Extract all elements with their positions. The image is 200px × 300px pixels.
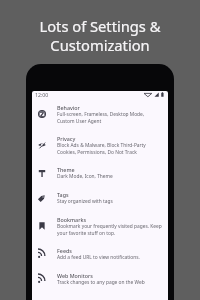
- button[interactable]: Theme: [32, 160, 168, 185]
- staticText: Privacy: [57, 135, 76, 142]
- staticText: Bookmarks: [57, 216, 86, 223]
- staticText: Theme: [57, 166, 75, 173]
- staticText: Dark Mode, Icon, Theme: [57, 173, 113, 180]
- button[interactable]: Bookmarks: [32, 210, 168, 241]
- staticText: Full-screen, Frameless, Desktop Mode, Cu…: [57, 111, 145, 124]
- staticText: Behavior: [57, 104, 80, 111]
- staticText: Track changes to any page on the Web: [57, 279, 145, 286]
- staticText: Lots of Settings & Customization: [0, 16, 200, 55]
- staticText: Add a feed URL to view notifications.: [57, 254, 140, 261]
- staticText: 12:00: [35, 91, 49, 98]
- staticText: Tags: [57, 191, 69, 198]
- staticText: Block Ads & Malware, Block Third-Party C…: [57, 142, 146, 155]
- button[interactable]: Privacy: [32, 129, 168, 160]
- staticText: Feeds: [57, 247, 72, 254]
- staticText: Stay organized with tags: [57, 198, 113, 205]
- button[interactable]: Behavior: [32, 98, 168, 129]
- button[interactable]: Tags: [32, 185, 168, 210]
- button[interactable]: Feeds: [32, 241, 168, 266]
- staticText: Bookmark your frequently visited pages. …: [57, 223, 162, 236]
- staticText: Web Monitors: [57, 272, 93, 279]
- button[interactable]: Web Monitors: [32, 266, 168, 291]
